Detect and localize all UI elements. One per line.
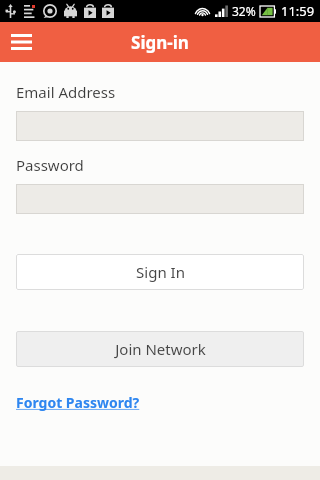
staticText: 11:59 — [281, 2, 315, 20]
button[interactable]: Join Network — [16, 331, 304, 367]
button[interactable]: Forgot Password? — [16, 393, 140, 412]
button[interactable]: Open navigation menu — [4, 25, 38, 59]
button[interactable] — [16, 111, 304, 141]
staticText: Sign-in — [131, 31, 189, 54]
staticText: Password — [16, 155, 84, 175]
staticText: Sign In — [136, 262, 185, 282]
button[interactable]: Sign In — [16, 254, 304, 290]
button[interactable] — [16, 184, 304, 214]
staticText: 32% — [232, 3, 256, 19]
staticText: Join Network — [115, 339, 206, 359]
staticText: Email Address — [16, 82, 116, 102]
staticText: Forgot Password? — [16, 393, 140, 412]
